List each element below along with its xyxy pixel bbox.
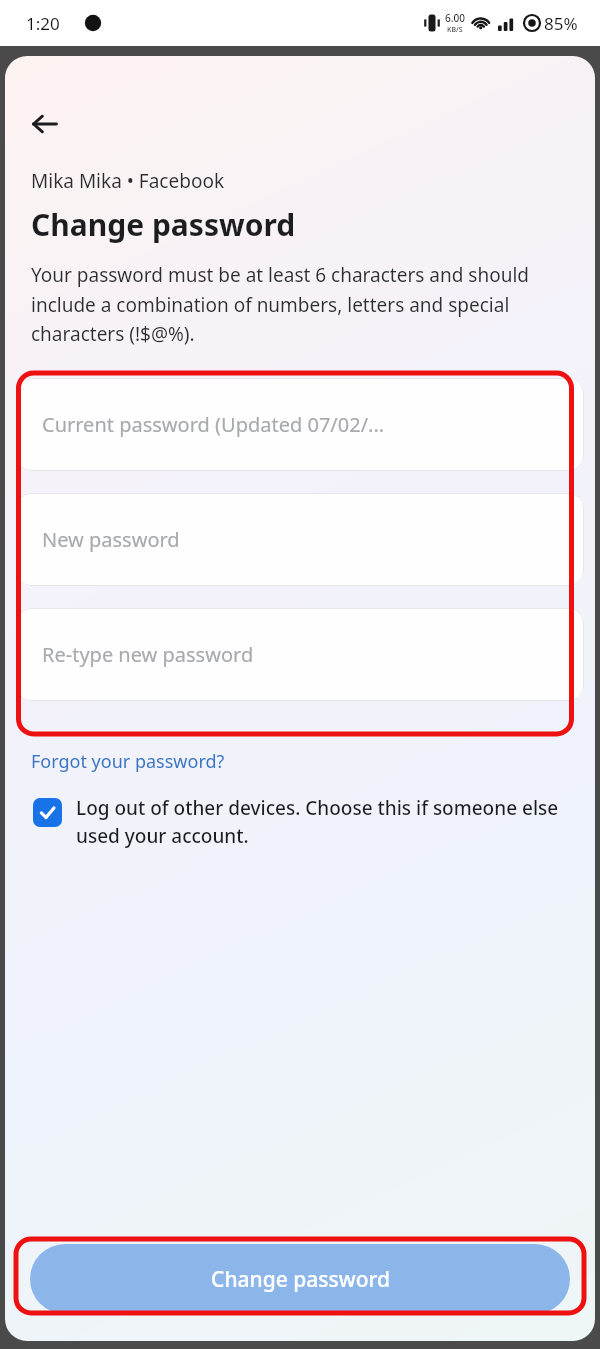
- button[interactable]: Back: [23, 102, 67, 146]
- staticText: Re-type new password: [42, 641, 254, 668]
- button[interactable]: Current password (Updated 07/02/...: [16, 378, 584, 471]
- button[interactable]: Re-type new password: [16, 608, 584, 701]
- staticText: Current password (Updated 07/02/...: [42, 411, 385, 438]
- button[interactable]: Forgot your password?: [27, 746, 229, 777]
- staticText: Mika Mika • Facebook: [31, 168, 225, 194]
- staticText: 1:20: [26, 12, 60, 35]
- staticText: New password: [42, 526, 180, 553]
- staticText: Your password must be at least 6 charact…: [31, 262, 569, 346]
- button[interactable]: Change password: [30, 1244, 570, 1314]
- staticText: KB/S: [447, 25, 463, 35]
- staticText: 85%: [544, 12, 578, 35]
- button[interactable]: New password: [16, 493, 584, 586]
- staticText: Change password: [211, 1265, 390, 1294]
- staticText: 6.00: [445, 11, 465, 25]
- staticText: Change password: [31, 204, 296, 245]
- button[interactable]: Log out of other devices. Choose this if…: [27, 793, 569, 851]
- staticText: Log out of other devices. Choose this if…: [76, 795, 569, 849]
- staticText: Forgot your password?: [31, 749, 225, 774]
